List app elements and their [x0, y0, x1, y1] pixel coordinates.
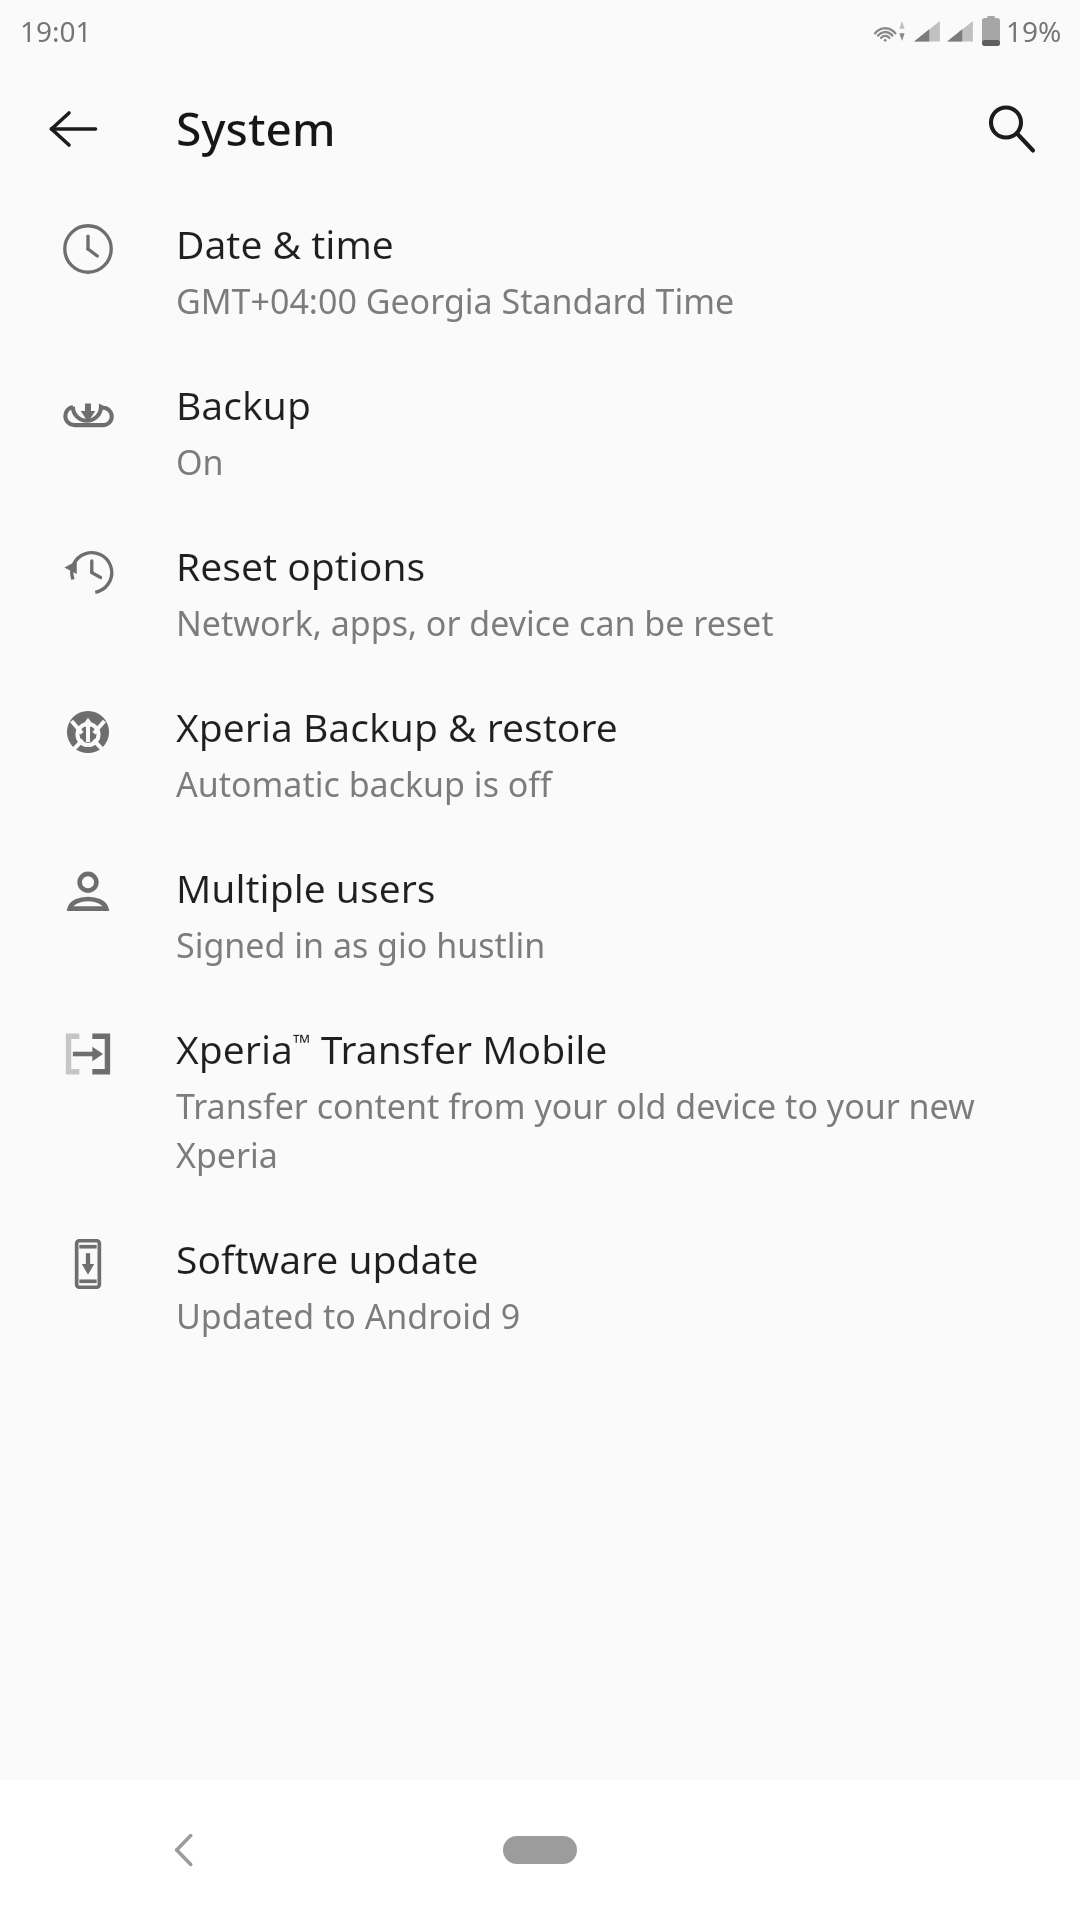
- button[interactable]: Xperia™ Transfer Mobile: [0, 998, 1080, 1208]
- staticText: Signed in as gio hustlin: [176, 922, 546, 968]
- staticText: Reset options: [176, 539, 426, 592]
- staticText: Updated to Android 9: [176, 1293, 521, 1339]
- staticText: Multiple users: [176, 861, 436, 914]
- staticText: 19%: [1006, 12, 1062, 50]
- staticText: Software update: [176, 1232, 479, 1285]
- button[interactable]: Backup: [0, 354, 1080, 515]
- staticText: GMT+04:00 Georgia Standard Time: [176, 278, 735, 324]
- button[interactable]: Back: [140, 1805, 230, 1895]
- button[interactable]: Date & time: [0, 195, 1080, 354]
- staticText: Automatic backup is off: [176, 761, 552, 807]
- staticText: Xperia™ Transfer Mobile: [176, 1022, 608, 1075]
- staticText: Transfer content from your old device to…: [176, 1083, 1040, 1178]
- button[interactable]: Reset options: [0, 515, 1080, 676]
- staticText: Date & time: [176, 217, 394, 270]
- staticText: Network, apps, or device can be reset: [176, 600, 774, 646]
- staticText: Backup: [176, 378, 311, 431]
- button[interactable]: Software update: [0, 1208, 1080, 1369]
- button[interactable]: Home: [475, 1805, 605, 1895]
- staticText: 19:01: [20, 12, 92, 50]
- staticText: On: [176, 439, 224, 485]
- button[interactable]: Xperia Backup & restore: [0, 676, 1080, 837]
- button[interactable]: Search: [966, 84, 1056, 174]
- staticText: Xperia Backup & restore: [176, 700, 618, 753]
- button[interactable]: Back: [28, 84, 118, 174]
- button[interactable]: Multiple users: [0, 837, 1080, 998]
- staticText: System: [176, 97, 336, 160]
